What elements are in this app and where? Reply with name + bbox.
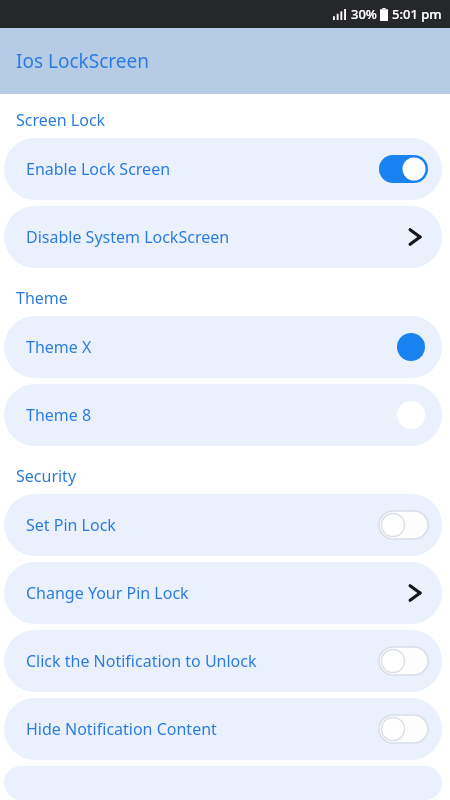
- staticText: Enable Lock Screen: [26, 158, 379, 180]
- button[interactable]: Toggle off: [379, 715, 428, 743]
- staticText: Theme 8: [26, 404, 394, 426]
- button[interactable]: Toggle off: [379, 647, 428, 675]
- staticText: 5:01 pm: [392, 5, 442, 23]
- button[interactable]: Toggle off: [379, 511, 428, 539]
- button[interactable]: Set Pin Lock: [4, 494, 442, 556]
- button[interactable]: Enable Lock Screen: [4, 138, 442, 200]
- staticText: Security: [16, 465, 77, 487]
- button[interactable]: Theme 8: [4, 384, 442, 446]
- button[interactable]: Toggle on: [379, 155, 428, 183]
- button[interactable]: Open: [398, 222, 428, 252]
- staticText: Change Your Pin Lock: [26, 582, 398, 604]
- button[interactable]: Selected theme: [394, 333, 428, 361]
- button[interactable]: Theme X: [4, 316, 442, 378]
- staticText: Hide Notification Content: [26, 718, 379, 740]
- staticText: Disable System LockScreen: [26, 226, 398, 248]
- button[interactable]: Unselected theme: [394, 401, 428, 429]
- staticText: 30%: [351, 5, 377, 23]
- staticText: Theme X: [26, 336, 394, 358]
- staticText: Ios LockScreen: [16, 48, 149, 74]
- button[interactable]: Open: [398, 578, 428, 608]
- staticText: Screen Lock: [16, 109, 106, 131]
- button[interactable]: Change Your Pin Lock: [4, 562, 442, 624]
- staticText: Set Pin Lock: [26, 514, 379, 536]
- button[interactable]: Disable System LockScreen: [4, 206, 442, 268]
- staticText: Theme: [16, 287, 68, 309]
- staticText: Click the Notification to Unlock: [26, 650, 379, 672]
- button[interactable]: Click the Notification to Unlock: [4, 630, 442, 692]
- button[interactable]: Hide Notification Content: [4, 698, 442, 760]
